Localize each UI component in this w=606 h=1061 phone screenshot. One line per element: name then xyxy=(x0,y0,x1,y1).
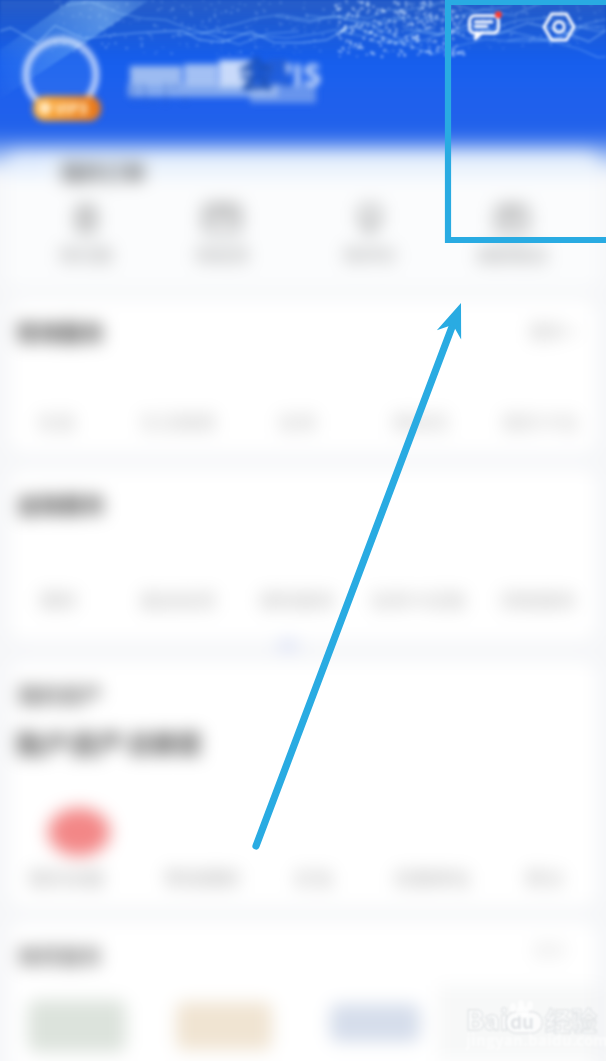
button[interactable]: Tool 1 xyxy=(122,565,243,627)
button[interactable]: Order status 1 xyxy=(151,190,302,276)
button[interactable]: Order status 3 xyxy=(454,190,606,276)
button[interactable]: Service 3 xyxy=(364,390,485,452)
button[interactable]: Order status 0 xyxy=(0,190,151,276)
button[interactable]: Settings xyxy=(528,4,582,58)
button[interactable]: Service 4 xyxy=(485,390,606,452)
button[interactable]: Banner 0 xyxy=(18,990,188,1056)
button[interactable]: Banner 1 xyxy=(208,990,378,1056)
button[interactable]: Profile avatar xyxy=(22,38,100,116)
button[interactable]: Tool 4 xyxy=(485,565,606,627)
button[interactable]: Entry 0 xyxy=(0,800,122,900)
button[interactable]: Service 0 xyxy=(0,390,122,452)
button[interactable]: Banner 2 xyxy=(398,990,568,1056)
button[interactable]: Tool 3 xyxy=(364,565,485,627)
button[interactable]: Entry 2 xyxy=(243,800,364,900)
button[interactable]: Entry 1 xyxy=(122,800,243,900)
button[interactable]: Service 2 xyxy=(243,390,364,452)
button[interactable]: Service 1 xyxy=(122,390,243,452)
button[interactable]: Entry 4 xyxy=(485,800,606,900)
button[interactable]: Tool 0 xyxy=(0,565,122,627)
button[interactable]: Order status 2 xyxy=(302,190,454,276)
button[interactable]: Entry 3 xyxy=(364,800,485,900)
button[interactable]: Tool 2 xyxy=(243,565,364,627)
button[interactable]: Messages xyxy=(452,4,506,58)
